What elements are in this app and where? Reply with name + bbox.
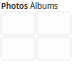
staticText: Albums	[30, 1, 58, 11]
staticText: Photos	[1, 1, 28, 11]
